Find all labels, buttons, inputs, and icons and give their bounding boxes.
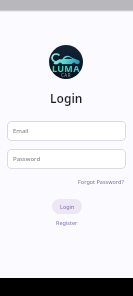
button[interactable]: Forgot Password? <box>78 178 124 185</box>
button[interactable]: Password <box>7 149 126 169</box>
staticText: Password <box>13 155 41 163</box>
staticText: Register <box>56 219 78 226</box>
button[interactable]: Register <box>56 219 78 226</box>
staticText: Login <box>60 203 75 210</box>
button[interactable]: Login <box>52 199 82 214</box>
staticText: LUMA <box>52 62 80 74</box>
staticText: CAR <box>61 72 72 78</box>
staticText: Forgot Password? <box>78 178 124 185</box>
staticText: Login <box>50 90 83 106</box>
staticText: Email <box>13 127 29 135</box>
button[interactable]: Email <box>7 121 126 141</box>
